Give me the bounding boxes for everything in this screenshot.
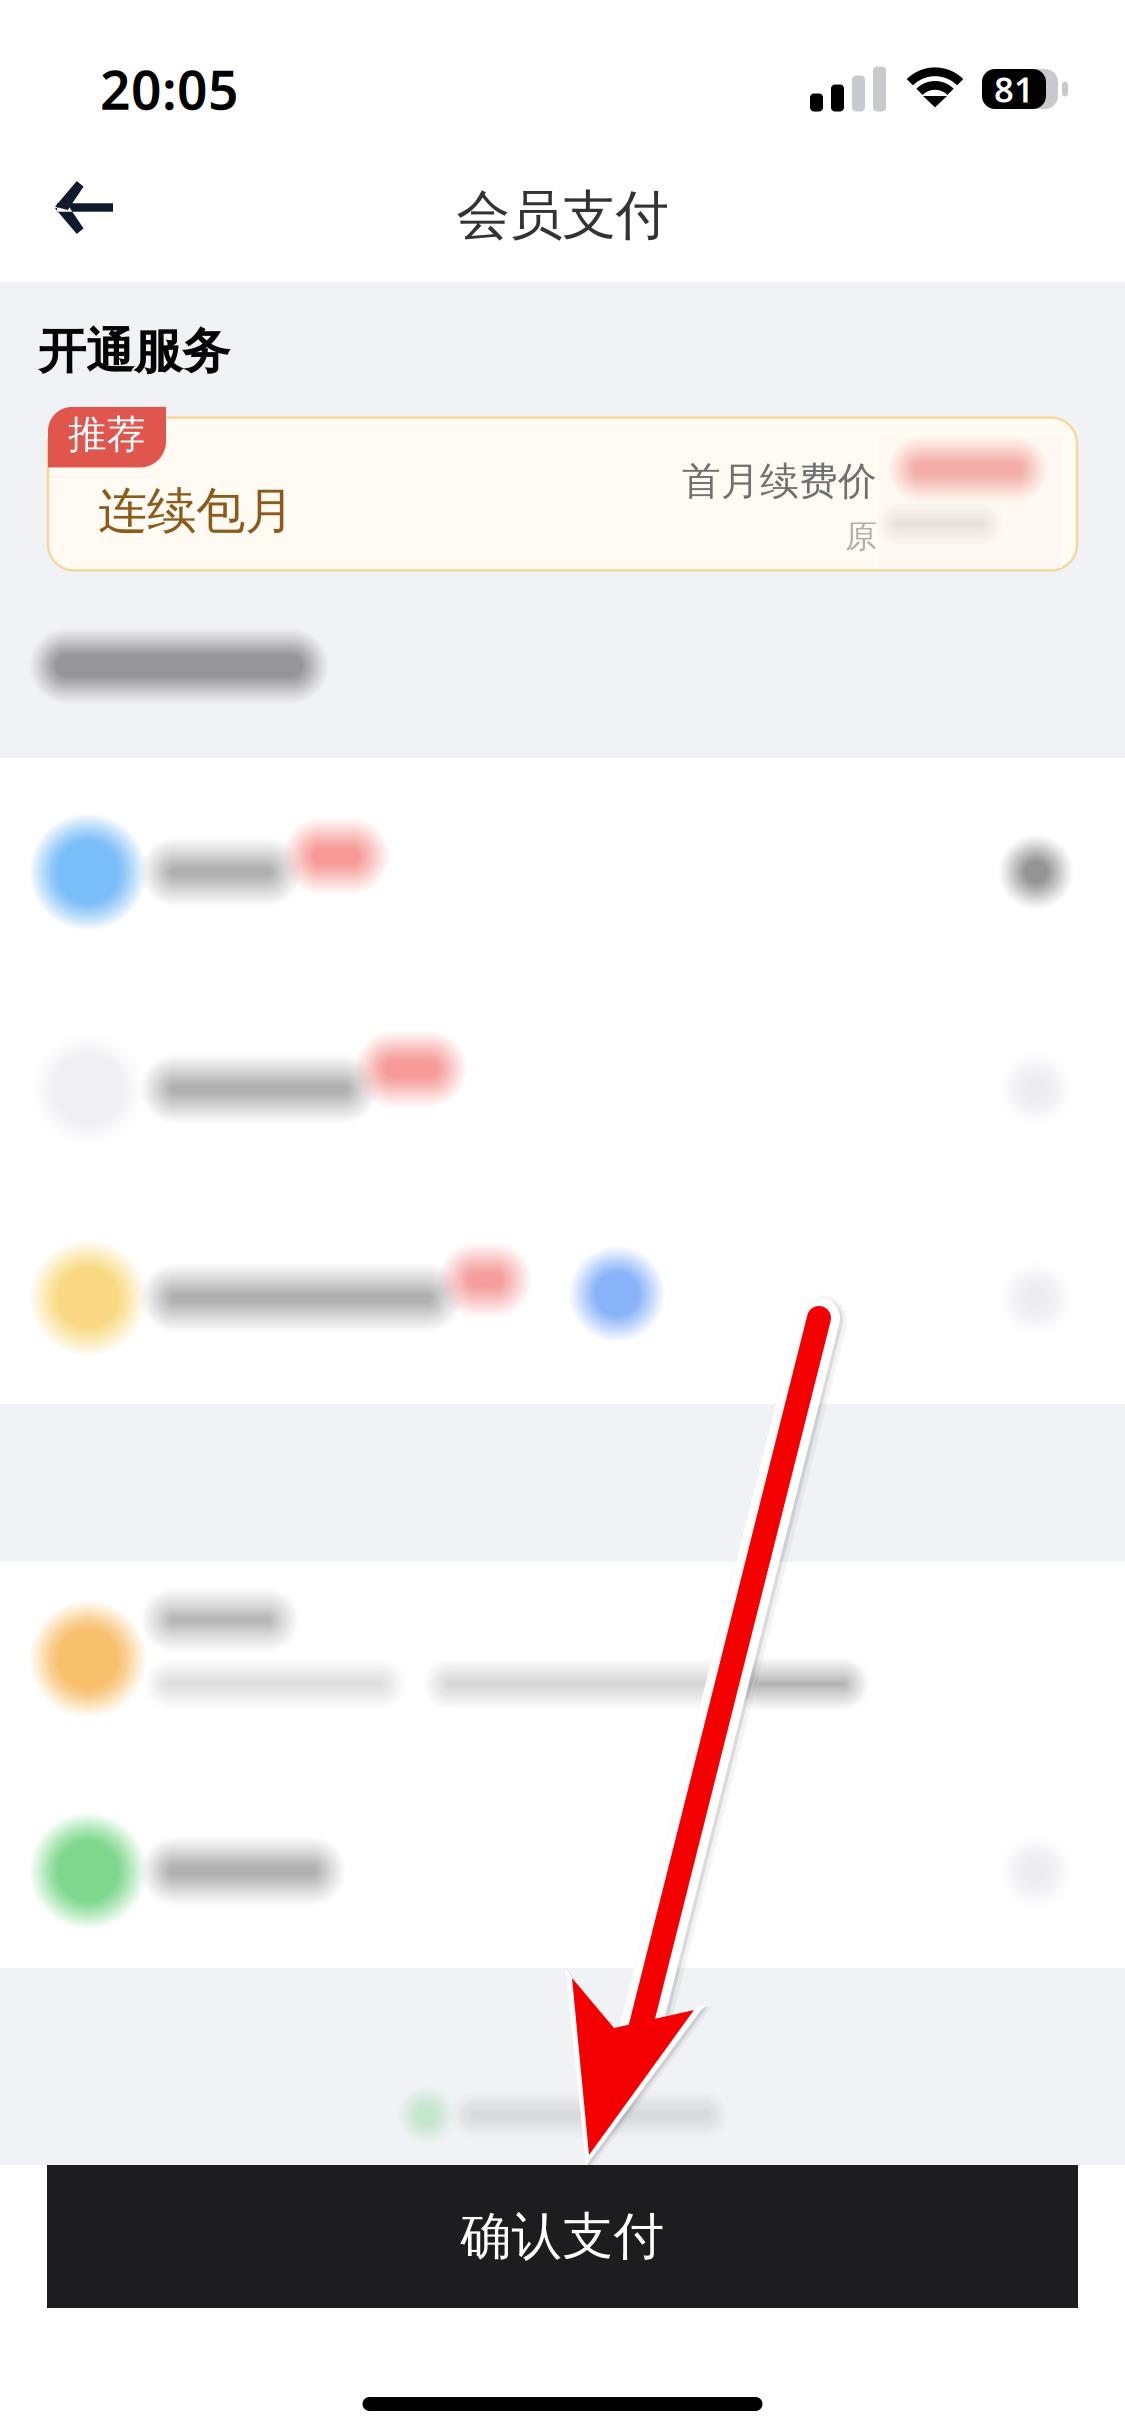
staticText: 开通服务 — [38, 322, 230, 381]
button[interactable]: 确认支付 — [47, 2165, 1078, 2308]
staticText: 会员支付 — [456, 183, 668, 248]
staticText: 连续包月 — [98, 481, 294, 541]
button[interactable]: 返回 — [0, 147, 157, 267]
button[interactable] — [0, 1562, 1125, 1752]
staticText: 20:05 — [100, 54, 239, 124]
staticText: 原 — [845, 517, 877, 556]
button[interactable] — [0, 758, 1125, 986]
button[interactable]: 连续包月 — [48, 407, 1077, 581]
button[interactable] — [0, 986, 1125, 1192]
staticText: 推荐 — [68, 411, 146, 458]
staticText: 81 — [994, 66, 1034, 112]
button[interactable] — [0, 1192, 1125, 1404]
staticText: 确认支付 — [460, 2205, 664, 2268]
button[interactable] — [0, 1752, 1125, 1968]
staticText: 首月续费价 — [682, 458, 877, 505]
